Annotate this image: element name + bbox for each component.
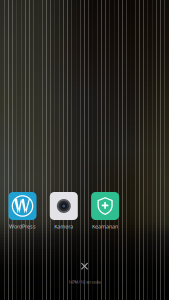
button[interactable]: WordPress xyxy=(8,192,36,230)
button[interactable]: Close xyxy=(74,256,95,276)
staticText: Keamanan xyxy=(92,223,118,230)
button[interactable]: Keamanan xyxy=(91,192,119,230)
staticText: Kamera xyxy=(54,223,73,230)
staticText: 147M/ 1G tersedia xyxy=(68,279,100,285)
button[interactable]: Kamera xyxy=(50,192,78,230)
staticText: WordPress xyxy=(9,223,36,230)
